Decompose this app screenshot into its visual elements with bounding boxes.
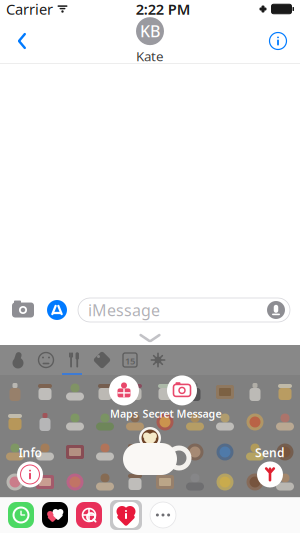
button[interactable]: Search app	[76, 502, 102, 528]
staticText: Carrier	[6, 0, 53, 19]
button[interactable]: Info	[17, 461, 43, 487]
button[interactable]: Category 3	[60, 346, 88, 374]
staticText: Maps	[110, 406, 138, 421]
button[interactable]: Send	[257, 461, 283, 487]
button[interactable]: Recents	[8, 502, 34, 528]
staticText: Secret Message	[142, 406, 221, 421]
button[interactable]: Back	[0, 19, 44, 63]
button[interactable]: Category 6	[144, 346, 172, 374]
staticText: 15	[125, 355, 135, 367]
button[interactable]: iMessage	[78, 298, 290, 322]
staticText: 2:22 PM	[136, 0, 191, 19]
staticText: KB	[140, 20, 160, 42]
button[interactable]: Camera	[10, 297, 36, 323]
staticText: Kate	[136, 47, 164, 65]
button[interactable]: Heart info app	[110, 500, 142, 530]
button[interactable]: Category 5	[116, 346, 144, 374]
button[interactable]: Maps	[109, 375, 139, 421]
button[interactable]: More apps	[150, 502, 176, 528]
button[interactable]: Category 2	[32, 346, 60, 374]
staticText: Send	[255, 444, 285, 460]
button[interactable]: App Store	[44, 297, 70, 323]
button[interactable]: Details	[256, 19, 300, 63]
staticText: iMessage	[88, 299, 160, 321]
button[interactable]: Hearts app	[42, 502, 68, 528]
button[interactable]: Category 1	[4, 346, 32, 374]
staticText: Info	[18, 444, 41, 460]
button[interactable]: Secret Message	[142, 375, 221, 421]
button[interactable]: Category 4	[88, 346, 116, 374]
